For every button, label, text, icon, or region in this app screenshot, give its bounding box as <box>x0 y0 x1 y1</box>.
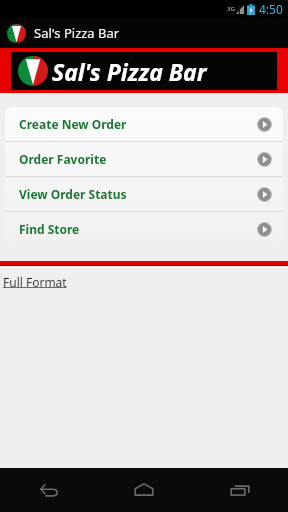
button[interactable]: Back <box>0 468 96 512</box>
button[interactable]: Find Store <box>5 212 283 246</box>
staticText: 4:50 <box>259 1 283 17</box>
staticText: Full Format <box>3 274 67 290</box>
button[interactable]: Home <box>96 468 192 512</box>
button[interactable]: Order Favorite <box>5 142 283 176</box>
staticText: Create New Order <box>19 116 127 132</box>
staticText: Order Favorite <box>19 151 107 167</box>
button[interactable]: Recent apps <box>192 468 288 512</box>
button[interactable]: View Order Status <box>5 177 283 211</box>
staticText: 3G <box>227 5 235 13</box>
button[interactable]: Full Format <box>0 272 73 292</box>
staticText: Find Store <box>19 221 80 237</box>
button[interactable]: Create New Order <box>5 107 283 141</box>
staticText: Sal's Pizza Bar <box>34 24 120 42</box>
staticText: View Order Status <box>19 186 127 202</box>
staticText: Sal's Pizza Bar <box>52 56 207 87</box>
